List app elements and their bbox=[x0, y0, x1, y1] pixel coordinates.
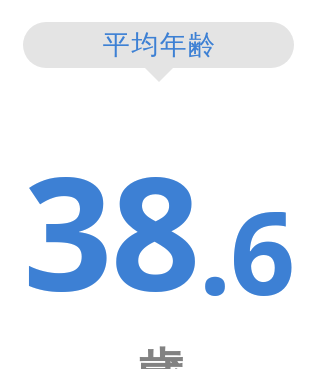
staticText: 38 bbox=[23, 122, 199, 336]
button[interactable]: 平均年齢 bbox=[23, 22, 294, 82]
staticText: 平均年齢 bbox=[102, 28, 216, 62]
staticText: 歳 bbox=[135, 342, 183, 369]
other: 平均年齢 38.6 歳 bbox=[23, 122, 295, 336]
staticText: .6 bbox=[199, 173, 295, 328]
